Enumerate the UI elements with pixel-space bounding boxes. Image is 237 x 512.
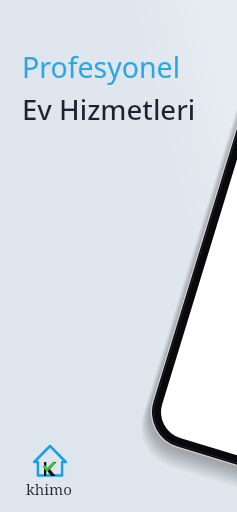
staticText: khimo bbox=[26, 479, 72, 499]
staticText: Ev Hizmetleri bbox=[22, 90, 196, 128]
staticText: Profesyonel bbox=[22, 48, 181, 87]
button[interactable]: khimo bbox=[22, 443, 75, 499]
